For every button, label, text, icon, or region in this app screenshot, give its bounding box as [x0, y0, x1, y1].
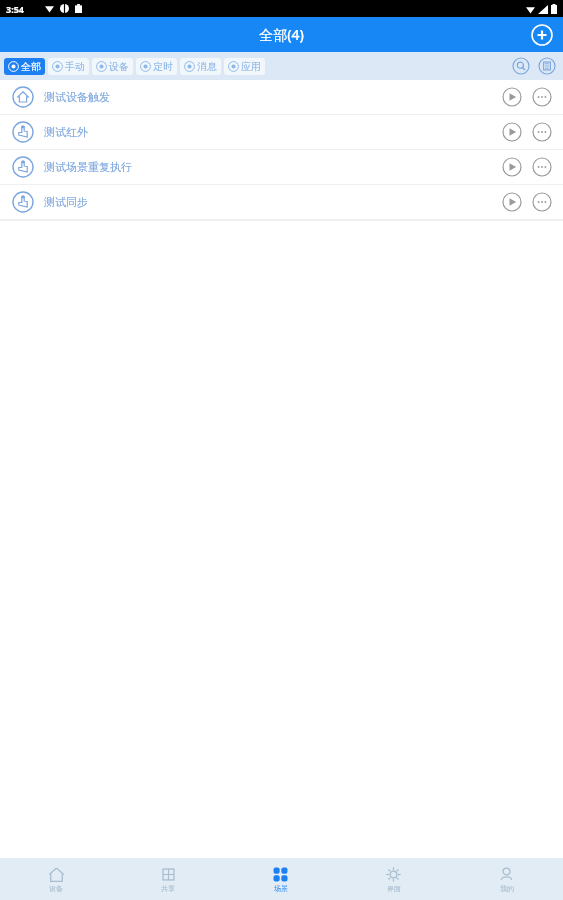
staticText: 设备	[109, 60, 129, 73]
button[interactable]: Run	[501, 156, 523, 178]
staticText: 全部(4)	[259, 25, 304, 44]
staticText: 3:54	[6, 3, 24, 15]
button[interactable]: 定时	[136, 58, 177, 75]
button[interactable]: 测试场景重复执行	[0, 150, 563, 184]
staticText: 测试设备触发	[44, 90, 501, 104]
button[interactable]: More options	[531, 86, 553, 108]
button[interactable]: Run	[501, 121, 523, 143]
staticText: 共享	[161, 884, 175, 893]
button[interactable]: 消息	[180, 58, 221, 75]
staticText: 手动	[65, 60, 85, 73]
button[interactable]: Run	[501, 191, 523, 213]
button[interactable]: 设备	[92, 58, 133, 75]
button[interactable]: 测试设备触发	[0, 80, 563, 114]
staticText: 全部	[21, 60, 41, 73]
button[interactable]: 测试红外	[0, 115, 563, 149]
staticText: 我的	[500, 884, 514, 893]
button[interactable]: List view	[537, 56, 557, 76]
button[interactable]: 界面	[337, 862, 450, 897]
staticText: 界面	[387, 884, 401, 893]
staticText: 测试场景重复执行	[44, 160, 501, 174]
button[interactable]: Add	[529, 22, 555, 48]
staticText: 应用	[241, 60, 261, 73]
button[interactable]: More options	[531, 191, 553, 213]
button[interactable]: Run	[501, 86, 523, 108]
staticText: 测试红外	[44, 125, 501, 139]
button[interactable]: 我的	[450, 862, 563, 897]
button[interactable]: 测试同步	[0, 185, 563, 219]
button[interactable]: 全部	[4, 58, 45, 75]
staticText: 场景	[274, 884, 288, 893]
button[interactable]: 手动	[48, 58, 89, 75]
button[interactable]: 应用	[224, 58, 265, 75]
button[interactable]: 设备	[0, 862, 112, 897]
staticText: 测试同步	[44, 195, 501, 209]
button[interactable]: More options	[531, 156, 553, 178]
button[interactable]: 场景	[224, 862, 337, 897]
button[interactable]: More options	[531, 121, 553, 143]
button[interactable]: 共享	[112, 862, 224, 897]
staticText: 设备	[49, 884, 63, 893]
button[interactable]: Search	[511, 56, 531, 76]
staticText: 定时	[153, 60, 173, 73]
staticText: 消息	[197, 60, 217, 73]
